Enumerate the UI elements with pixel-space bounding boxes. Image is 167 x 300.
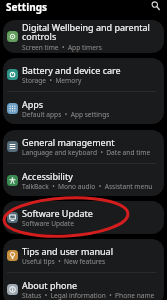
staticText: Settings — [6, 0, 47, 14]
button[interactable]: Battery and device care — [3, 58, 164, 91]
button[interactable]: About phone — [3, 273, 164, 300]
staticText: Battery and device care — [22, 64, 121, 76]
button[interactable]: Digital Wellbeing and parental controls — [3, 20, 164, 53]
button[interactable]: Search — [149, 0, 162, 12]
button[interactable]: Apps — [3, 92, 164, 124]
staticText: Screen time • App timers — [22, 43, 102, 52]
button[interactable]: Tips and user manual — [3, 239, 164, 272]
button[interactable]: Accessibility — [3, 164, 164, 196]
staticText: Software Update — [22, 207, 93, 219]
staticText: Status • Legal information • Phone name — [22, 291, 155, 300]
button[interactable]: Software Update — [3, 201, 164, 234]
staticText: Language and keyboard • Date and time — [22, 148, 151, 157]
staticText: Storage • Memory — [22, 76, 82, 85]
staticText: Apps — [22, 98, 44, 110]
staticText: Useful tips • New features — [22, 257, 106, 266]
button[interactable]: General management — [3, 130, 164, 163]
staticText: Tips and user manual — [22, 245, 113, 257]
staticText: Digital Wellbeing and parental controls — [22, 21, 159, 43]
staticText: Software Update — [22, 219, 74, 228]
staticText: General management — [22, 136, 115, 148]
staticText: Default apps • App settings — [22, 110, 110, 119]
staticText: Accessibility — [22, 170, 73, 182]
staticText: TalkBack • Mono audio • Assistant menu — [22, 182, 153, 191]
staticText: About phone — [22, 279, 78, 291]
